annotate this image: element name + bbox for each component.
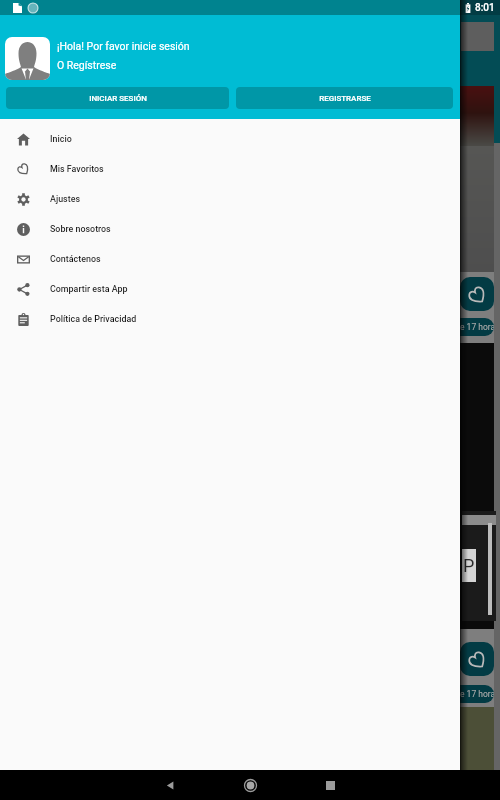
button[interactable]: Inicio xyxy=(0,124,460,154)
button[interactable]: Contáctenos xyxy=(0,244,460,274)
button[interactable]: Sobre nosotros xyxy=(0,214,460,244)
other: Home xyxy=(244,779,257,792)
staticText: O Regístrese xyxy=(57,59,117,71)
staticText: P xyxy=(463,555,475,576)
staticText: Sobre nosotros xyxy=(50,224,111,234)
staticText: 8:01 xyxy=(475,2,495,14)
button[interactable]: INICIAR SESIÓN xyxy=(6,87,229,109)
staticText: Política de Privacidad xyxy=(50,314,137,324)
button[interactable]: Mis Favoritos xyxy=(0,154,460,184)
staticText: ¡Hola! Por favor inicie sesión xyxy=(57,40,190,52)
staticText: Inicio xyxy=(50,134,72,144)
staticText: REGISTRARSE xyxy=(319,94,371,103)
button[interactable]: REGISTRARSE xyxy=(236,87,453,109)
staticText: INICIAR SESIÓN xyxy=(89,94,147,103)
staticText: Mis Favoritos xyxy=(50,164,104,174)
staticText: Contáctenos xyxy=(50,254,101,264)
button[interactable]: Ajustes xyxy=(0,184,460,214)
staticText: Ajustes xyxy=(50,194,81,204)
staticText: e 17 horas xyxy=(460,689,494,699)
staticText: e 17 horas xyxy=(460,322,494,332)
other: Back xyxy=(166,781,175,790)
staticText: Compartir esta App xyxy=(50,284,128,294)
button[interactable]: Compartir esta App xyxy=(0,274,460,304)
button[interactable]: Política de Privacidad xyxy=(0,304,460,334)
